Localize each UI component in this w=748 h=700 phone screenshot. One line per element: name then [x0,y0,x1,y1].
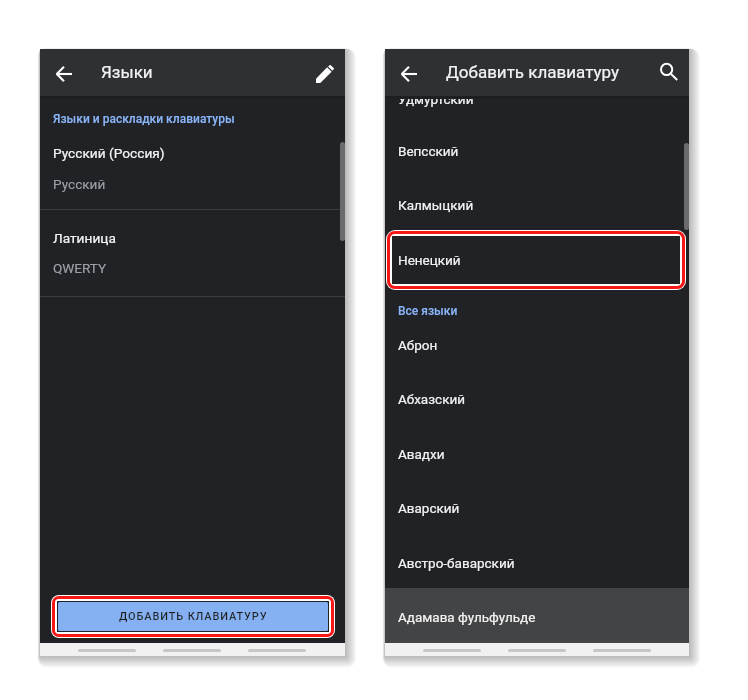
staticText: Адамава фульфульде [398,609,536,625]
button[interactable]: Латиница [40,210,345,296]
staticText: Русский (Россия) [53,145,165,161]
button[interactable]: Back [44,50,84,97]
button[interactable]: Back [389,50,429,97]
staticText: Добавить клавиатуру [446,62,620,82]
staticText: Ненецкий [398,252,461,268]
button[interactable] [385,233,689,288]
staticText: Языки [101,62,153,82]
staticText: Русский [53,176,106,192]
button[interactable]: Search [648,48,688,95]
button[interactable]: Русский (Россия) [40,106,345,209]
button[interactable] [385,178,689,233]
staticText: Калмыцкий [398,197,474,213]
staticText: Вепсский [398,143,459,159]
staticText: Авадхи [398,446,445,462]
staticText: Языки и раскладки клавиатуры [53,112,235,126]
staticText: Аварский [398,500,460,516]
button[interactable] [385,588,689,644]
staticText: ДОБАВИТЬ КЛАВИАТУРУ [119,610,268,623]
staticText: Аброн [398,337,438,353]
staticText: Удмуртский [398,91,474,107]
staticText: QWERTY [53,260,107,276]
staticText: Латиница [53,230,116,246]
staticText: Все языки [398,304,458,318]
button[interactable]: Edit [305,50,345,97]
button[interactable] [385,124,689,179]
button[interactable]: ДОБАВИТЬ КЛАВИАТУРУ [58,602,328,631]
button[interactable]: Ненецкий [393,237,679,283]
staticText: Австро-баварский [398,555,515,571]
staticText: Абхазский [398,391,466,407]
button[interactable] [385,95,689,124]
